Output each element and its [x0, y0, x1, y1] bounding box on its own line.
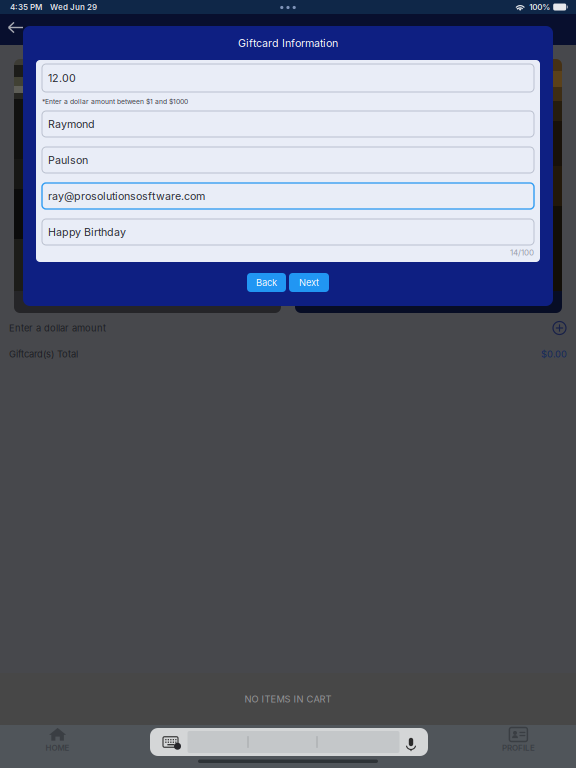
staticText: NO ITEMS IN CART: [244, 693, 331, 704]
button[interactable]: Back: [0, 14, 24, 45]
staticText: Giftcard(s) Total: [9, 348, 78, 359]
staticText: SHOP: [162, 743, 184, 752]
staticText: Raymond: [48, 118, 95, 130]
staticText: Next: [299, 277, 319, 288]
staticText: Paulson: [48, 154, 88, 166]
staticText: Back: [256, 277, 277, 288]
button[interactable]: CART: [230, 725, 346, 768]
button[interactable]: Enter a dollar amount: [0, 315, 576, 341]
button[interactable]: PROFILE: [461, 725, 576, 768]
staticText: Enter a dollar amount: [9, 322, 106, 333]
staticText: Happy Birthday: [48, 226, 126, 238]
button[interactable]: Back: [247, 273, 286, 292]
staticText: ray@prosolutionsosftware.com: [48, 190, 205, 202]
button[interactable]: HOME: [0, 725, 115, 768]
staticText: *Enter a dollar amount between $1 and $1…: [42, 98, 188, 105]
staticText: SERVICES: [384, 743, 423, 752]
staticText: 4:35 PM: [10, 2, 42, 12]
staticText: PROFILE: [502, 743, 535, 752]
staticText: $0.00: [541, 348, 567, 359]
button[interactable]: SERVICES: [346, 725, 461, 768]
button[interactable]: SHOP: [115, 725, 230, 768]
staticText: 12.00: [48, 72, 76, 84]
staticText: Giftcard Information: [238, 37, 338, 49]
button[interactable]: Keyboard: [161, 735, 179, 748]
staticText: Wed Jun 29: [50, 2, 97, 12]
staticText: HOME: [46, 743, 70, 752]
button[interactable]: Dictate: [405, 735, 416, 749]
button[interactable]: Next: [289, 273, 329, 292]
staticText: 100%: [529, 2, 550, 12]
staticText: 14/100: [510, 248, 534, 257]
